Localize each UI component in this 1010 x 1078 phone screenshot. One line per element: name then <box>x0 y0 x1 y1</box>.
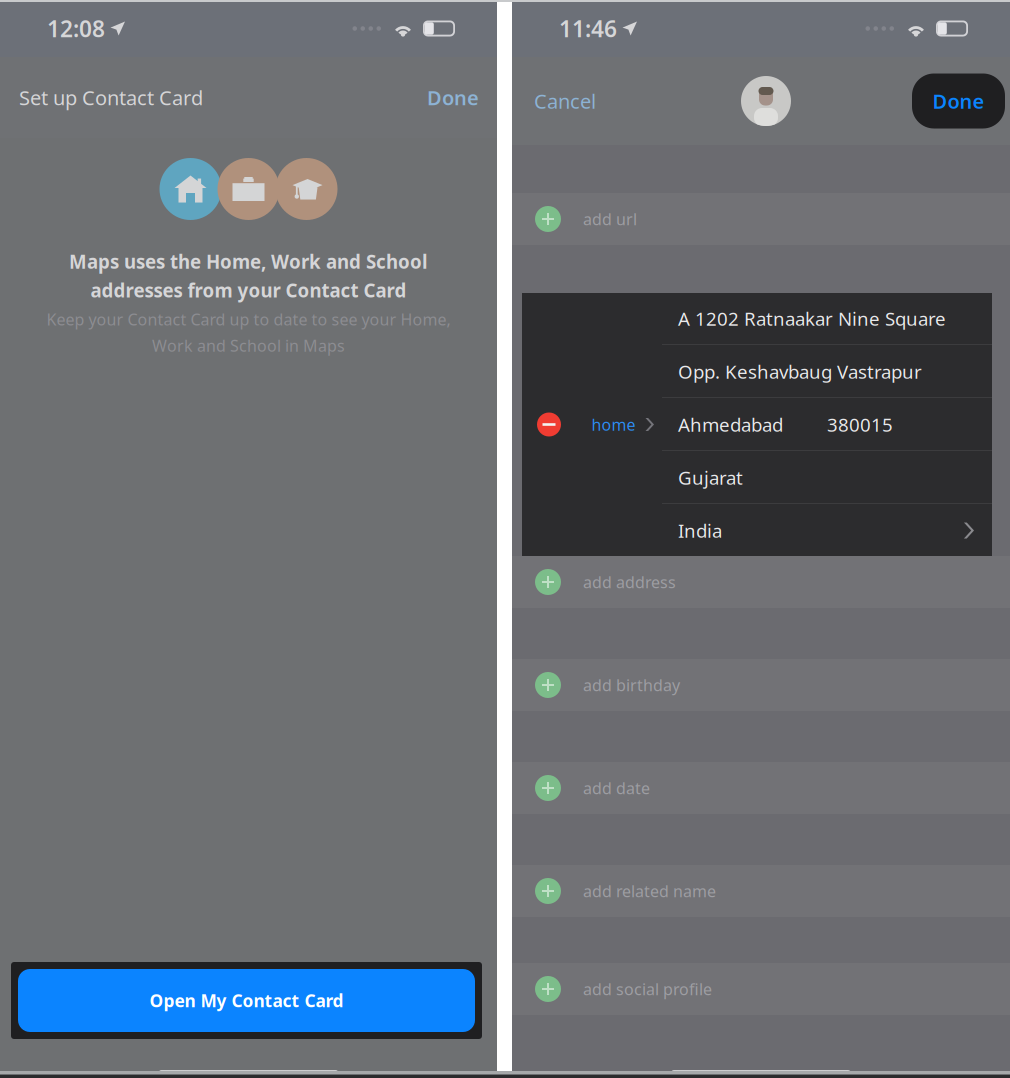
button[interactable]: Done <box>403 68 479 127</box>
staticText: add related name <box>583 880 716 902</box>
staticText: 11:46 <box>559 13 617 43</box>
button[interactable]: add date <box>512 762 1010 814</box>
button[interactable]: add url <box>512 193 1010 245</box>
staticText: India <box>678 518 722 543</box>
staticText: addresses from your Contact Card <box>90 278 406 303</box>
staticText: Set up Contact Card <box>19 84 203 111</box>
button[interactable]: Done <box>912 73 1005 128</box>
button[interactable]: add birthday <box>512 659 1010 711</box>
staticText: 12:08 <box>47 13 105 43</box>
staticText: add social profile <box>583 978 712 1000</box>
staticText: Keep your Contact Card up to date to see… <box>46 309 450 330</box>
button[interactable]: add social profile <box>512 963 1010 1015</box>
staticText: add address <box>583 571 676 593</box>
button[interactable]: add address <box>512 556 1010 608</box>
staticText: home <box>591 414 635 435</box>
button[interactable]: add related name <box>512 865 1010 917</box>
staticText: Done <box>932 88 984 114</box>
staticText: Opp. Keshavbaug Vastrapur <box>678 359 922 384</box>
staticText: Cancel <box>534 88 596 114</box>
staticText: add url <box>583 208 637 230</box>
staticText: Open My Contact Card <box>149 989 343 1012</box>
staticText: 380015 <box>827 412 893 437</box>
button[interactable]: Cancel <box>534 72 620 130</box>
staticText: A 1202 Ratnaakar Nine Square <box>678 306 946 331</box>
staticText: add birthday <box>583 674 680 696</box>
staticText: Gujarat <box>678 465 743 490</box>
staticText: Ahmedabad <box>678 412 783 437</box>
staticText: Work and School in Maps <box>152 335 345 356</box>
staticText: Done <box>427 84 479 111</box>
staticText: add date <box>583 777 650 799</box>
staticText: Maps uses the Home, Work and School <box>69 249 428 274</box>
button[interactable]: Open My Contact Card <box>18 969 475 1032</box>
